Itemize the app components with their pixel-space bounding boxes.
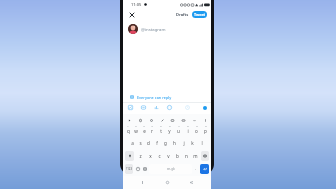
- button[interactable]: k: [188, 136, 197, 149]
- button[interactable]: b: [173, 149, 182, 162]
- staticText: i: [187, 128, 189, 134]
- staticText: q: [127, 128, 130, 134]
- button[interactable]: Add emoji: [166, 104, 173, 111]
- button[interactable]: j: [179, 136, 188, 149]
- staticText: m: [193, 153, 198, 159]
- button[interactable]: .: [193, 162, 199, 175]
- button[interactable]: Enter: [200, 164, 209, 174]
- staticText: z: [139, 153, 142, 159]
- button[interactable]: 7: [174, 123, 183, 136]
- staticText: b: [176, 153, 179, 159]
- button[interactable]: More: [191, 117, 197, 123]
- staticText: d: [147, 140, 150, 146]
- button[interactable]: n: [182, 149, 191, 162]
- staticText: c: [158, 153, 161, 159]
- staticText: p: [204, 128, 207, 134]
- button[interactable]: Home: [163, 178, 172, 187]
- staticText: g: [164, 140, 167, 146]
- button[interactable]: l: [197, 136, 206, 149]
- staticText: Everyone can reply: [137, 95, 172, 100]
- staticText: l: [201, 140, 203, 146]
- button[interactable]: Back: [138, 178, 147, 187]
- staticText: t: [160, 128, 162, 134]
- button[interactable]: Backspace: [201, 151, 209, 161]
- button[interactable]: Shift: [125, 151, 134, 161]
- staticText: Drafts: [176, 12, 189, 17]
- button[interactable]: 0: [201, 123, 210, 136]
- staticText: y: [168, 128, 171, 134]
- button[interactable]: Add poll: [153, 104, 160, 111]
- button[interactable]: d: [144, 136, 152, 149]
- staticText: 0: [205, 124, 207, 127]
- button[interactable]: Emoji: [134, 162, 141, 175]
- button[interactable]: Translate: [159, 117, 165, 123]
- button[interactable]: Voice typing: [126, 117, 132, 123]
- button[interactable]: z: [135, 149, 145, 162]
- button[interactable]: Add another tweet: [201, 104, 208, 111]
- button[interactable]: g: [161, 136, 170, 149]
- button[interactable]: Close: [126, 9, 137, 20]
- staticText: 6: [169, 124, 171, 127]
- staticText: u: [177, 128, 180, 134]
- button[interactable]: 1: [124, 123, 132, 136]
- button[interactable]: Settings: [202, 117, 208, 123]
- button[interactable]: Drafts: [174, 9, 191, 20]
- staticText: .: [195, 166, 197, 172]
- button[interactable]: Tweet: [192, 11, 207, 18]
- staticText: ?123: [126, 167, 133, 171]
- staticText: 2: [135, 124, 137, 127]
- staticText: e: [143, 128, 146, 134]
- button[interactable]: Recents: [187, 178, 196, 187]
- button[interactable]: f: [152, 136, 161, 149]
- button[interactable]: Emoji: [148, 117, 154, 123]
- button[interactable]: 2: [132, 123, 140, 136]
- staticText: 11:05: [131, 2, 142, 7]
- staticText: x: [149, 153, 152, 159]
- button[interactable]: a: [128, 136, 136, 149]
- staticText: k: [191, 140, 194, 146]
- button[interactable]: Schedule tweet: [184, 104, 191, 111]
- button[interactable]: h: [170, 136, 179, 149]
- staticText: r: [151, 128, 153, 134]
- staticText: 5: [160, 124, 162, 127]
- staticText: 3: [143, 124, 145, 127]
- button[interactable]: 9: [192, 123, 201, 136]
- staticText: 9: [196, 124, 198, 127]
- staticText: 1: [127, 124, 129, 127]
- button[interactable]: Stickers: [137, 117, 143, 123]
- button[interactable]: v: [164, 149, 173, 162]
- button[interactable]: 8: [183, 123, 192, 136]
- button[interactable]: m: [191, 149, 200, 162]
- staticText: a: [131, 140, 134, 146]
- staticText: h: [173, 140, 176, 146]
- button[interactable]: 4: [148, 123, 156, 136]
- staticText: n: [185, 153, 188, 159]
- button[interactable]: Profile picture: [128, 24, 138, 34]
- staticText: j: [183, 140, 185, 146]
- button[interactable]: 3: [140, 123, 148, 136]
- staticText: 8: [187, 124, 189, 127]
- button[interactable]: s: [136, 136, 144, 149]
- staticText: f: [156, 140, 158, 146]
- staticText: 7: [178, 124, 180, 127]
- staticText: Tweet: [194, 12, 206, 17]
- staticText: s: [139, 140, 142, 146]
- staticText: o: [195, 128, 198, 134]
- button[interactable]: Add GIF: [140, 104, 147, 111]
- button[interactable]: en-gb: [149, 164, 192, 174]
- staticText: v: [167, 153, 170, 159]
- button[interactable]: 6: [165, 123, 174, 136]
- button[interactable]: Clipboard: [180, 117, 186, 123]
- staticText: 4: [151, 124, 153, 127]
- button[interactable]: x: [145, 149, 155, 162]
- staticText: w: [134, 128, 138, 134]
- staticText: en-gb: [167, 167, 175, 171]
- button[interactable]: ?123: [125, 164, 133, 174]
- staticText: @instagram: [141, 26, 166, 32]
- button[interactable]: Change language: [141, 162, 148, 175]
- button[interactable]: GIF: [169, 117, 175, 123]
- button[interactable]: c: [155, 149, 164, 162]
- button[interactable]: 5: [156, 123, 165, 136]
- button[interactable]: Add photo: [127, 104, 134, 111]
